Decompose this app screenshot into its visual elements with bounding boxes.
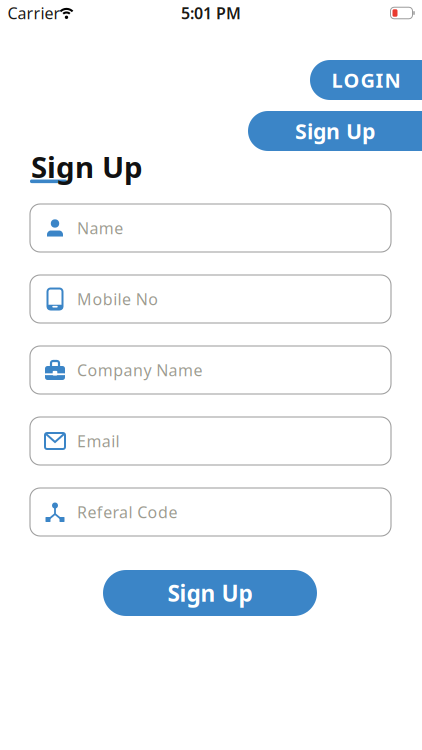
textField[interactable]: Email (77, 430, 391, 452)
textField[interactable]: Referal Code (77, 501, 391, 523)
button[interactable]: Sign Up (103, 570, 317, 616)
staticText: Name (77, 217, 123, 239)
staticText: 5:01 PM (181, 2, 241, 24)
staticText: Sign Up (167, 578, 252, 608)
staticText: Sign Up (31, 147, 143, 186)
textField[interactable]: Company Name (77, 359, 391, 381)
staticText: Mobile No (77, 288, 158, 310)
staticText: LOGIN (331, 67, 400, 93)
staticText: Sign Up (295, 117, 375, 145)
button[interactable]: Sign Up (248, 111, 422, 151)
textField[interactable]: Name (77, 217, 391, 239)
staticText: Carrier (7, 2, 60, 24)
staticText: Company Name (77, 359, 202, 381)
staticText: Referal Code (77, 501, 177, 523)
textField[interactable]: Mobile No (77, 288, 391, 310)
staticText: Email (77, 430, 120, 452)
button[interactable]: LOGIN (310, 60, 422, 100)
